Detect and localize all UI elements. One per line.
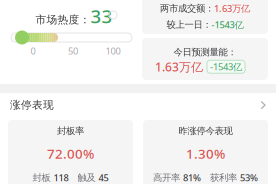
staticText: 50 [68,45,78,57]
staticText: 获利率 [210,172,237,183]
staticText: 118 [53,171,68,184]
staticText: 封板率 [57,125,84,137]
staticText: 0 [30,45,35,57]
staticText: -1543亿 [210,60,242,73]
button[interactable]: 封板率 [8,120,133,184]
staticText: 涨停表现 [10,98,54,111]
staticText: 1.30% [186,145,225,162]
staticText: 高开率 [153,172,180,183]
staticText: 33 [90,4,112,28]
staticText: 72.00% [47,145,94,162]
staticText: 53% [240,171,258,184]
staticText: 较上一日： [166,19,211,30]
staticText: 1.63万亿 [155,59,203,75]
staticText: 45 [98,171,108,184]
button[interactable]: 涨停表现 [0,93,276,117]
staticText: 昨涨停今表现 [178,125,232,137]
staticText: 封板 [32,172,50,183]
staticText: 今日预测量能： [173,46,236,58]
button[interactable]: 昨涨停今表现 [143,120,268,184]
staticText: 两市成交额： [160,3,214,14]
staticText: 100 [105,45,120,57]
staticText: 触及 [77,172,95,183]
staticText: 市场热度： [35,13,90,26]
staticText: -1543亿 [211,18,243,31]
staticText: 81% [183,171,201,184]
staticText: 1.63万亿 [214,2,250,14]
